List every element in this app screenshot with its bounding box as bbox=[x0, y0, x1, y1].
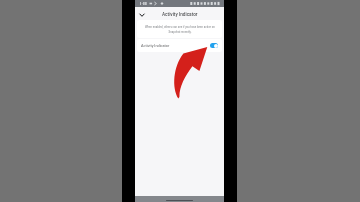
button[interactable]: Activity Indicator bbox=[137, 39, 222, 52]
button[interactable]: Back bbox=[137, 9, 147, 19]
staticText: Activity Indicator bbox=[141, 43, 170, 47]
staticText: Activity Indicator bbox=[162, 12, 198, 18]
staticText: When enabled, others can see if you have… bbox=[145, 25, 215, 33]
